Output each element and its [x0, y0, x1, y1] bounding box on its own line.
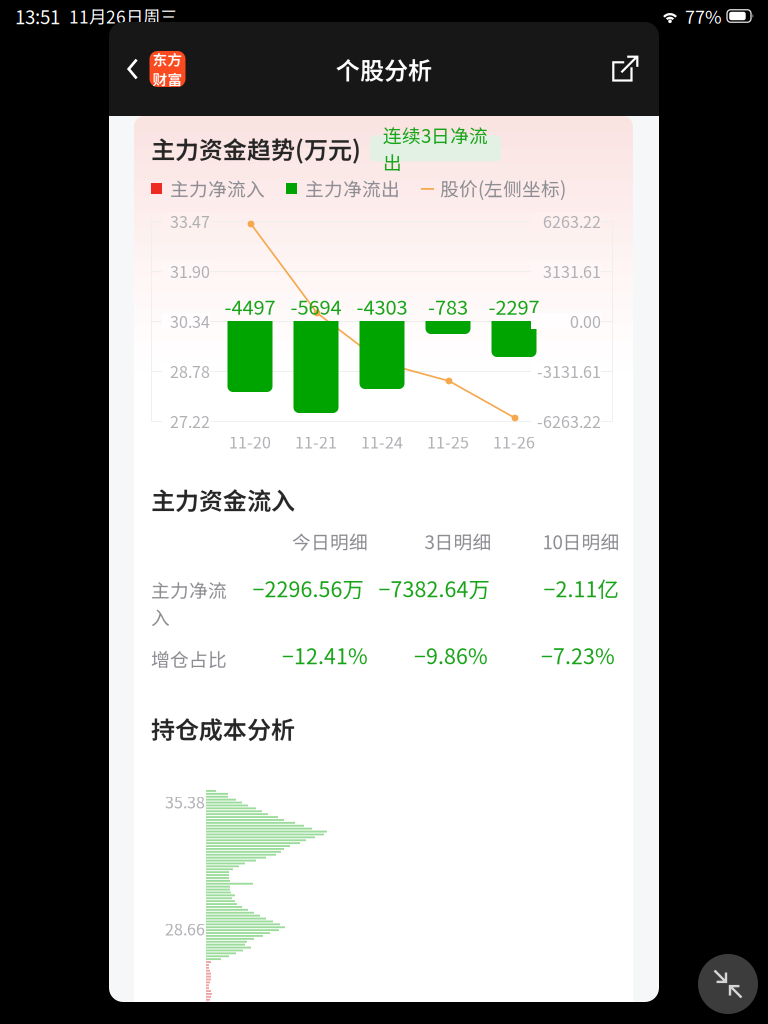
staticText: 10日明细 [542, 527, 619, 554]
button[interactable]: Collapse window [698, 954, 758, 1014]
staticText: -2297 [488, 291, 539, 320]
staticText: 增仓占比 [151, 645, 227, 672]
staticText: 28.66 [165, 917, 205, 940]
button[interactable]: Back [109, 22, 197, 116]
staticText: 东方 [152, 48, 182, 70]
staticText: 财富 [152, 68, 182, 89]
staticText: 11-20 [229, 430, 271, 453]
staticText: 11-24 [361, 430, 403, 453]
staticText: 11-26 [493, 430, 535, 453]
staticText: -4303 [356, 291, 407, 320]
staticText: −2296.56万 [252, 573, 363, 603]
staticText: −7.23% [541, 640, 615, 670]
staticText: −7382.64万 [378, 573, 489, 603]
staticText: 3日明细 [424, 527, 491, 554]
staticText: 主力净流入 [151, 576, 227, 630]
staticText: 31.90 [170, 259, 210, 283]
staticText: 主力资金流入 [151, 482, 295, 517]
staticText: 个股分析 [336, 52, 432, 86]
staticText: 11-25 [427, 430, 469, 453]
staticText: 6263.22 [543, 209, 601, 233]
staticText: 持仓成本分析 [151, 711, 295, 746]
staticText: −9.86% [414, 640, 488, 670]
staticText: -3131.61 [537, 359, 601, 383]
staticText: 11-21 [295, 430, 337, 453]
staticText: 30.34 [170, 309, 210, 333]
staticText: 27.22 [170, 409, 210, 433]
staticText: 主力资金趋势(万元) [151, 131, 361, 166]
staticText: 连续3日净流出 [383, 121, 488, 175]
staticText: -783 [428, 291, 468, 320]
staticText: 33.47 [170, 209, 210, 233]
staticText: −12.41% [282, 640, 368, 670]
staticText: −2.11亿 [543, 573, 618, 603]
staticText: 35.38 [165, 790, 205, 813]
staticText: 主力净流入 [170, 174, 265, 201]
staticText: -6263.22 [537, 409, 601, 433]
button[interactable]: Share [592, 22, 659, 116]
staticText: 13:51 [15, 2, 60, 29]
staticText: 77% [685, 3, 722, 29]
staticText: 主力净流出 [305, 174, 400, 201]
staticText: 28.78 [170, 359, 210, 383]
staticText: -5694 [290, 291, 341, 320]
staticText: 11月26日周三 [69, 3, 177, 29]
staticText: -4497 [224, 291, 275, 320]
staticText: 股价(左侧坐标) [440, 174, 566, 201]
staticText: 3131.61 [543, 259, 601, 283]
staticText: 今日明细 [292, 527, 368, 554]
staticText: 0.00 [570, 309, 601, 333]
